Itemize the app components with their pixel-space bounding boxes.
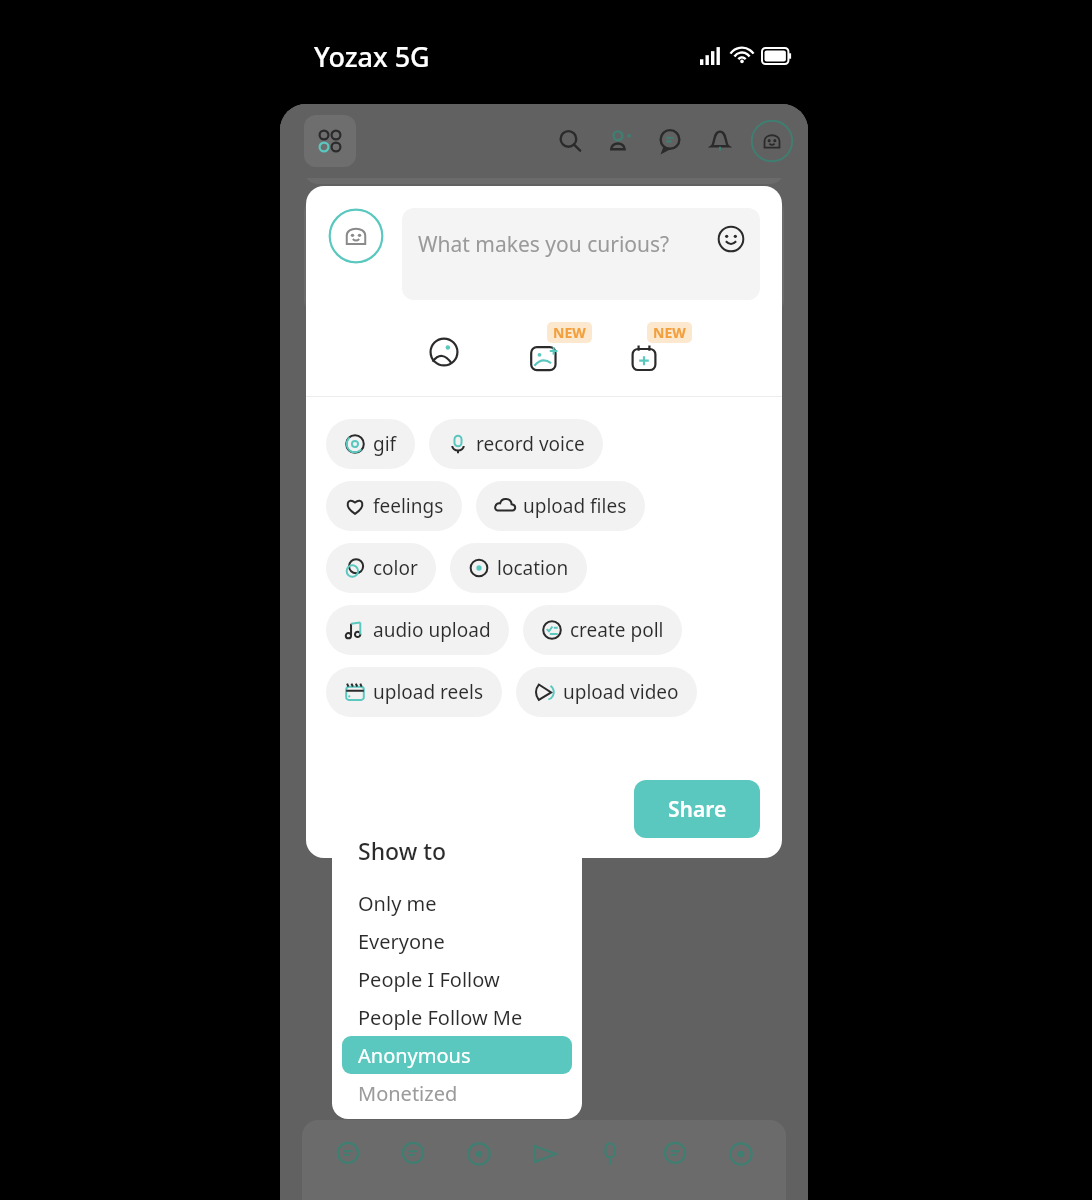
staticText: color [373, 555, 418, 581]
staticText: audio upload [373, 617, 491, 643]
button[interactable]: Emoji [716, 224, 746, 254]
button[interactable]: Only me [342, 884, 572, 922]
button[interactable]: location [450, 543, 587, 593]
staticText: Show to [358, 835, 447, 866]
button[interactable]: Menu [304, 115, 356, 167]
button[interactable]: Profile [750, 119, 794, 163]
button[interactable]: What makes you curious? [402, 208, 760, 300]
button[interactable]: Sort by [304, 122, 784, 184]
button[interactable]: Search [550, 121, 590, 161]
other: Close [742, 246, 762, 266]
staticText: upload reels [373, 679, 484, 705]
button[interactable]: Add photo [394, 326, 494, 378]
staticText: NEW [653, 323, 686, 342]
button[interactable]: audio upload [326, 605, 509, 655]
button[interactable]: Schedule, new [594, 326, 694, 378]
button[interactable]: Nav 2 [459, 1134, 499, 1174]
staticText: Everyone [358, 928, 445, 955]
button[interactable]: Anonymous avatar [328, 208, 384, 264]
staticText: Yozax 5G [314, 38, 430, 75]
button[interactable]: Add friend [600, 121, 640, 161]
button[interactable]: upload reels [326, 667, 502, 717]
button[interactable]: record voice [429, 419, 603, 469]
button[interactable]: Nav 4 [590, 1134, 630, 1174]
staticText: People I Follow [358, 966, 500, 993]
button[interactable]: ng that you [304, 198, 784, 314]
staticText: Sort by [322, 140, 388, 167]
staticText: Anonymous [358, 1042, 471, 1069]
button[interactable]: Notifications [700, 121, 740, 161]
staticText: People Follow Me [358, 1004, 523, 1031]
staticText: upload files [523, 493, 627, 519]
button[interactable]: Nav 1 [393, 1134, 433, 1174]
button[interactable]: Anonymous [342, 1036, 572, 1074]
staticText: Share [668, 795, 727, 824]
button[interactable]: People I Follow [342, 960, 572, 998]
button[interactable]: Share [634, 780, 760, 838]
button[interactable]: AI compose, new [494, 326, 594, 378]
staticText: upload video [563, 679, 679, 705]
staticText: ng that you [564, 242, 678, 271]
button[interactable]: Nav 0 [328, 1134, 368, 1174]
button[interactable]: create poll [523, 605, 682, 655]
button[interactable]: feelings [326, 481, 462, 531]
staticText: gif [373, 431, 397, 457]
button[interactable]: Nav 6 [721, 1134, 761, 1174]
button[interactable]: color [326, 543, 436, 593]
staticText: Only me [358, 890, 437, 917]
staticText: location [497, 555, 569, 581]
button[interactable]: Messages [650, 121, 690, 161]
button[interactable]: gif [326, 419, 415, 469]
staticText: record voice [476, 431, 585, 457]
button[interactable]: upload files [476, 481, 645, 531]
staticText: create poll [570, 617, 664, 643]
button[interactable]: upload video [516, 667, 697, 717]
button[interactable]: Nav 3 [524, 1134, 564, 1174]
staticText: Now [567, 139, 612, 168]
staticText: Monetized [358, 1080, 458, 1107]
button[interactable]: Everyone [342, 922, 572, 960]
button[interactable]: People Follow Me [342, 998, 572, 1036]
button[interactable]: Monetized [342, 1074, 572, 1112]
staticText: feelings [373, 493, 444, 519]
button[interactable]: Nav 5 [655, 1134, 695, 1174]
staticText: What makes you curious? [418, 230, 670, 259]
staticText: NEW [553, 323, 586, 342]
